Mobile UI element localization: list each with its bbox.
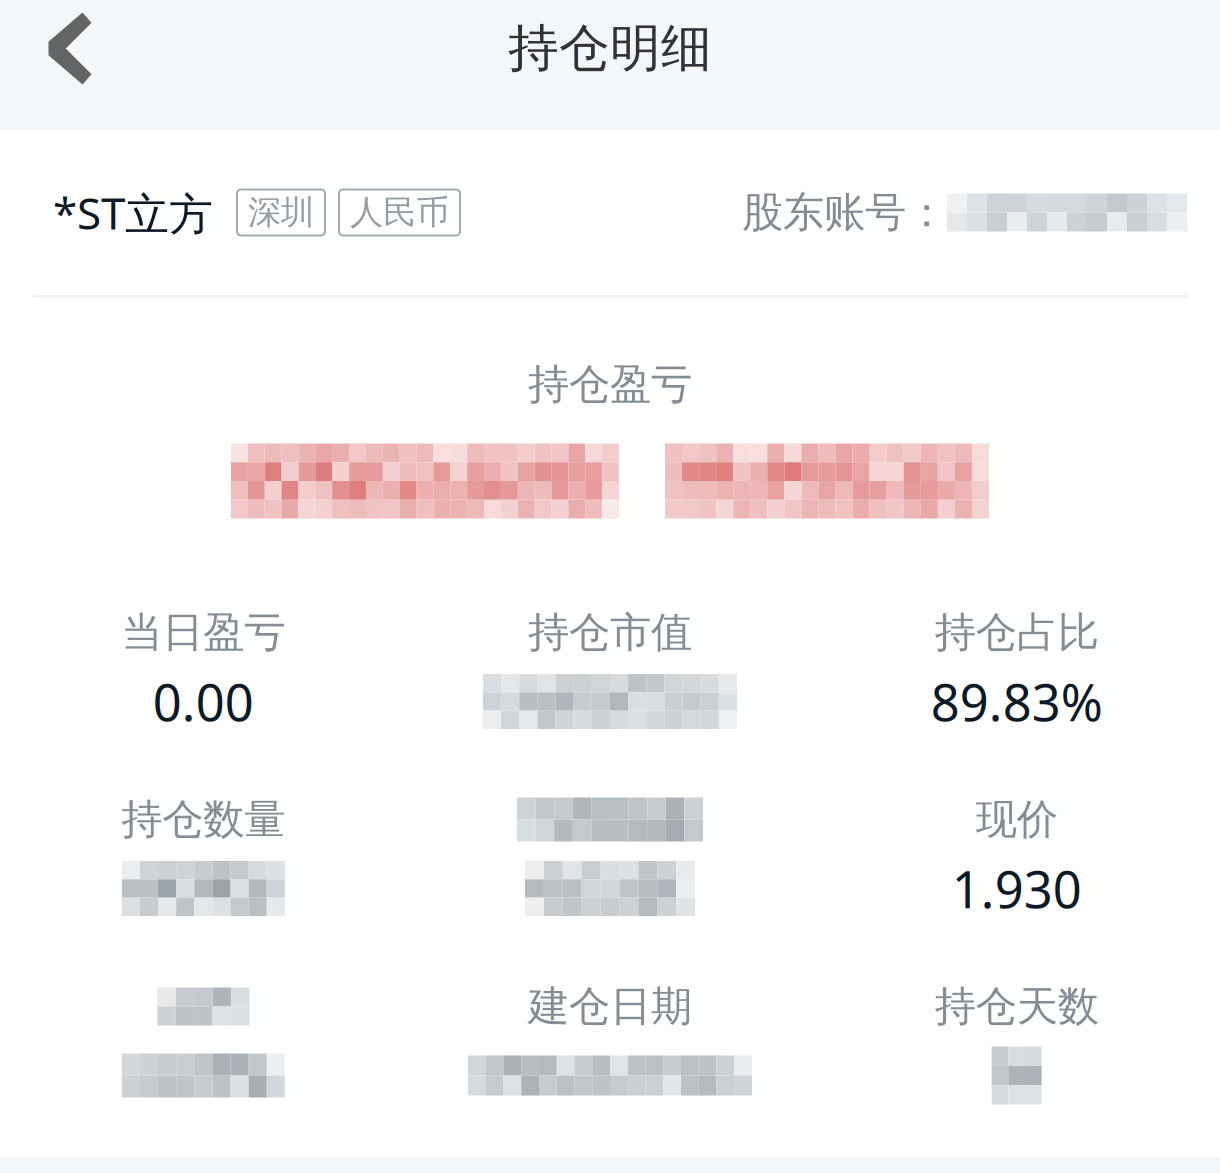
staticText: 持仓盈亏 [528, 359, 692, 410]
button[interactable]: Back [0, 0, 140, 97]
staticText: 持仓占比 [935, 607, 1099, 658]
staticText: *ST立方 [53, 183, 213, 242]
button[interactable]: *ST立方 [0, 130, 1220, 295]
staticText: 持仓市值 [528, 607, 692, 658]
staticText: 现价 [976, 794, 1058, 845]
staticText: 人民币 [350, 192, 449, 233]
staticText: 建仓日期 [528, 981, 692, 1032]
staticText: 1.930 [952, 855, 1082, 922]
staticText: 持仓天数 [935, 981, 1099, 1032]
staticText: 深圳 [248, 192, 314, 233]
staticText: 当日盈亏 [121, 607, 285, 658]
staticText: 持仓数量 [121, 794, 285, 845]
staticText: 89.83% [931, 668, 1103, 735]
staticText: 持仓明细 [508, 17, 712, 80]
staticText: 0.00 [153, 668, 254, 735]
staticText: 股东账号： [742, 187, 947, 238]
